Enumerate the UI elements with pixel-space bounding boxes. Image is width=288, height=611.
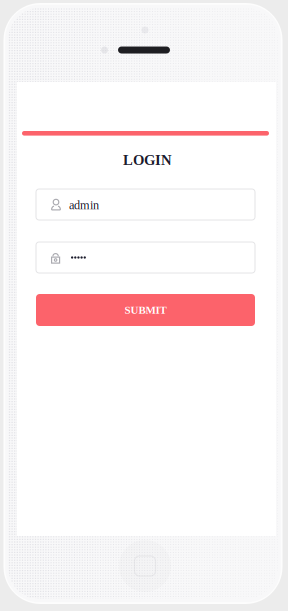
staticText: admin [69,198,99,212]
button[interactable]: SUBMIT [36,294,255,326]
button[interactable]: Home [119,540,171,592]
button[interactable] [36,242,255,273]
staticText: SUBMIT [124,304,166,316]
staticText: LOGIN [123,152,172,168]
button[interactable]: admin [36,189,255,220]
